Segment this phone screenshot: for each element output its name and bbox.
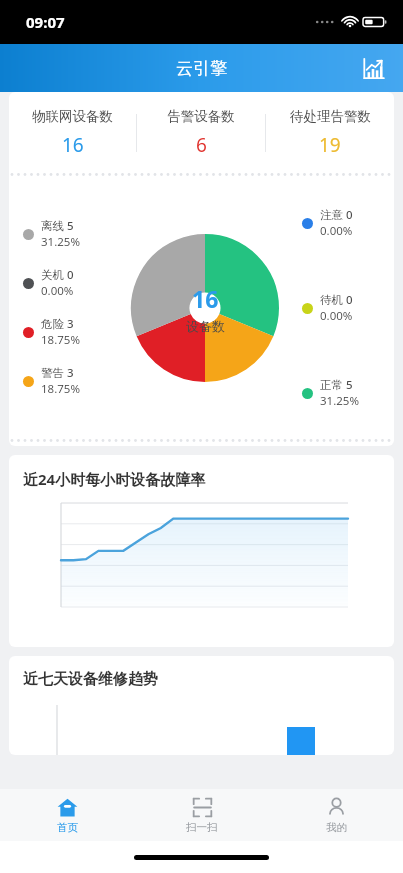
button[interactable]: 告警设备数 [137,92,265,173]
staticText: 0.00% [41,283,74,299]
button[interactable]: 我的 [269,789,403,841]
staticText: 6 [196,132,207,158]
staticText: 0.00% [320,223,353,239]
staticText: 正常 5 [320,377,353,393]
staticText: 扫一扫 [186,821,218,834]
button[interactable]: 物联网设备数 [9,92,136,173]
staticText: 09:07 [26,12,65,32]
staticText: 注意 0 [320,207,353,223]
staticText: 警告 3 [41,365,74,381]
staticText: 31.25% [41,234,80,250]
button[interactable]: 扫一扫 [135,789,269,841]
staticText: 近七天设备维修趋势 [23,670,158,689]
staticText: 首页 [57,821,78,834]
staticText: 待处理告警数 [290,108,371,125]
staticText: 0.00% [320,308,353,324]
button[interactable]: 首页 [0,789,135,841]
staticText: 我的 [326,821,347,834]
staticText: 云引擎 [176,58,227,79]
staticText: 关机 0 [41,267,74,283]
button[interactable]: 统计报表 [353,48,393,88]
staticText: 设备数 [186,318,225,334]
staticText: 18.75% [41,381,80,397]
staticText: 离线 5 [41,218,74,234]
staticText: 16 [192,283,219,314]
button[interactable]: 待处理告警数 [266,92,394,173]
staticText: 近24小时每小时设备故障率 [23,469,206,489]
staticText: 待机 0 [320,292,353,308]
staticText: 危险 3 [41,316,74,332]
staticText: 16 [62,132,84,158]
staticText: 18.75% [41,332,80,348]
staticText: 31.25% [320,393,359,409]
staticText: 物联网设备数 [32,108,113,125]
staticText: 告警设备数 [167,108,235,125]
staticText: 19 [319,132,341,158]
